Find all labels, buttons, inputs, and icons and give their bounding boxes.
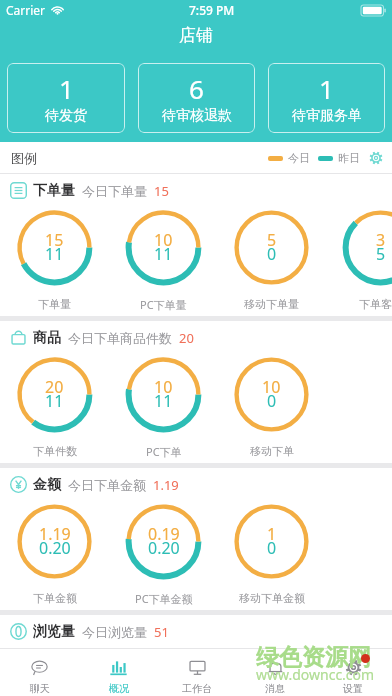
staticText: 11 — [45, 243, 64, 265]
button[interactable]: 昨日 — [318, 151, 360, 165]
staticText: 概况 — [109, 682, 129, 695]
staticText: 今日下单金额 — [68, 477, 146, 493]
staticText: 待审服务单 — [292, 107, 362, 125]
staticText: 6 — [189, 71, 204, 106]
button[interactable]: 商品 — [10, 321, 382, 354]
button[interactable]: Settings — [369, 151, 383, 165]
button[interactable]: 下单量 — [10, 174, 382, 207]
staticText: 1.19 — [153, 476, 179, 494]
staticText: 浏览量 — [33, 623, 75, 641]
staticText: 移动下单 — [250, 444, 294, 458]
staticText: 0.20 — [148, 537, 180, 559]
staticText: PC下单 — [146, 444, 182, 459]
staticText: 15 — [45, 229, 64, 251]
staticText: 下单件数 — [33, 444, 77, 458]
button[interactable]: 5 — [217, 207, 326, 316]
button[interactable]: 6 — [138, 63, 255, 133]
staticText: 51 — [154, 623, 169, 641]
button[interactable]: 消息 — [236, 649, 314, 696]
staticText: 15 — [154, 182, 169, 200]
staticText: 下单量 — [38, 297, 71, 311]
staticText: 待发货 — [45, 107, 87, 125]
staticText: 0 — [267, 537, 277, 559]
button[interactable]: 浏览量 — [10, 615, 382, 648]
staticText: 移动下单金额 — [239, 591, 305, 605]
staticText: PC下单量 — [140, 297, 187, 312]
staticText: 0.19 — [148, 523, 180, 545]
staticText: 下单金额 — [33, 591, 77, 605]
button[interactable]: 设置 — [314, 649, 392, 696]
button[interactable]: 1 — [217, 501, 326, 610]
button[interactable]: 聊天 — [0, 649, 79, 696]
staticText: 5 — [376, 243, 386, 265]
button[interactable]: 金额 — [10, 468, 382, 501]
staticText: 今日下单商品件数 — [68, 330, 172, 346]
staticText: 0 — [267, 243, 277, 265]
staticText: 聊天 — [30, 682, 50, 695]
staticText: 工作台 — [182, 682, 212, 695]
button[interactable]: 概况 — [79, 649, 158, 696]
staticText: 1 — [267, 523, 277, 545]
staticText: 7:59 PM — [189, 2, 235, 18]
staticText: 11 — [154, 390, 173, 412]
staticText: PC下单金额 — [135, 591, 193, 606]
staticText: 消息 — [265, 682, 285, 695]
button[interactable]: 3 — [326, 207, 392, 316]
staticText: 今日浏览量 — [82, 624, 147, 640]
button[interactable]: 1 — [268, 63, 385, 133]
staticText: 1.19 — [39, 523, 71, 545]
staticText: 0.20 — [39, 537, 71, 559]
staticText: 图例 — [11, 150, 37, 166]
button[interactable]: 10 — [109, 207, 218, 316]
staticText: 今日 — [288, 151, 310, 165]
staticText: 10 — [262, 376, 281, 398]
button[interactable]: 0.19 — [109, 501, 218, 610]
staticText: 10 — [154, 229, 173, 251]
staticText: 商品 — [33, 329, 61, 347]
staticText: 待审核退款 — [162, 107, 232, 125]
button[interactable]: 15 — [0, 207, 109, 316]
staticText: 设置 — [343, 682, 363, 695]
button[interactable]: 1 — [7, 63, 125, 133]
staticText: 3 — [376, 229, 386, 251]
staticText: 下单客户 — [359, 297, 392, 311]
staticText: 下单量 — [33, 182, 75, 200]
staticText: 11 — [45, 390, 64, 412]
button[interactable]: 工作台 — [158, 649, 236, 696]
button[interactable]: 1.19 — [0, 501, 109, 610]
staticText: 移动下单量 — [244, 297, 299, 311]
staticText: www.downcc.com — [256, 665, 375, 684]
staticText: 1 — [319, 71, 334, 106]
staticText: 5 — [267, 229, 277, 251]
staticText: 10 — [154, 376, 173, 398]
staticText: 11 — [154, 243, 173, 265]
staticText: 绿色资源网 — [256, 643, 371, 672]
button[interactable]: 今日 — [268, 151, 310, 165]
staticText: 0 — [267, 390, 277, 412]
staticText: Carrier — [6, 2, 46, 18]
staticText: 金额 — [33, 476, 61, 494]
staticText: 店铺 — [179, 25, 213, 46]
staticText: 昨日 — [338, 151, 360, 165]
button[interactable]: 10 — [217, 354, 326, 463]
staticText: 20 — [179, 329, 194, 347]
button[interactable]: 10 — [109, 354, 218, 463]
staticText: 1 — [59, 71, 74, 106]
button[interactable]: 20 — [0, 354, 109, 463]
staticText: 20 — [45, 376, 64, 398]
staticText: 今日下单量 — [82, 183, 147, 199]
